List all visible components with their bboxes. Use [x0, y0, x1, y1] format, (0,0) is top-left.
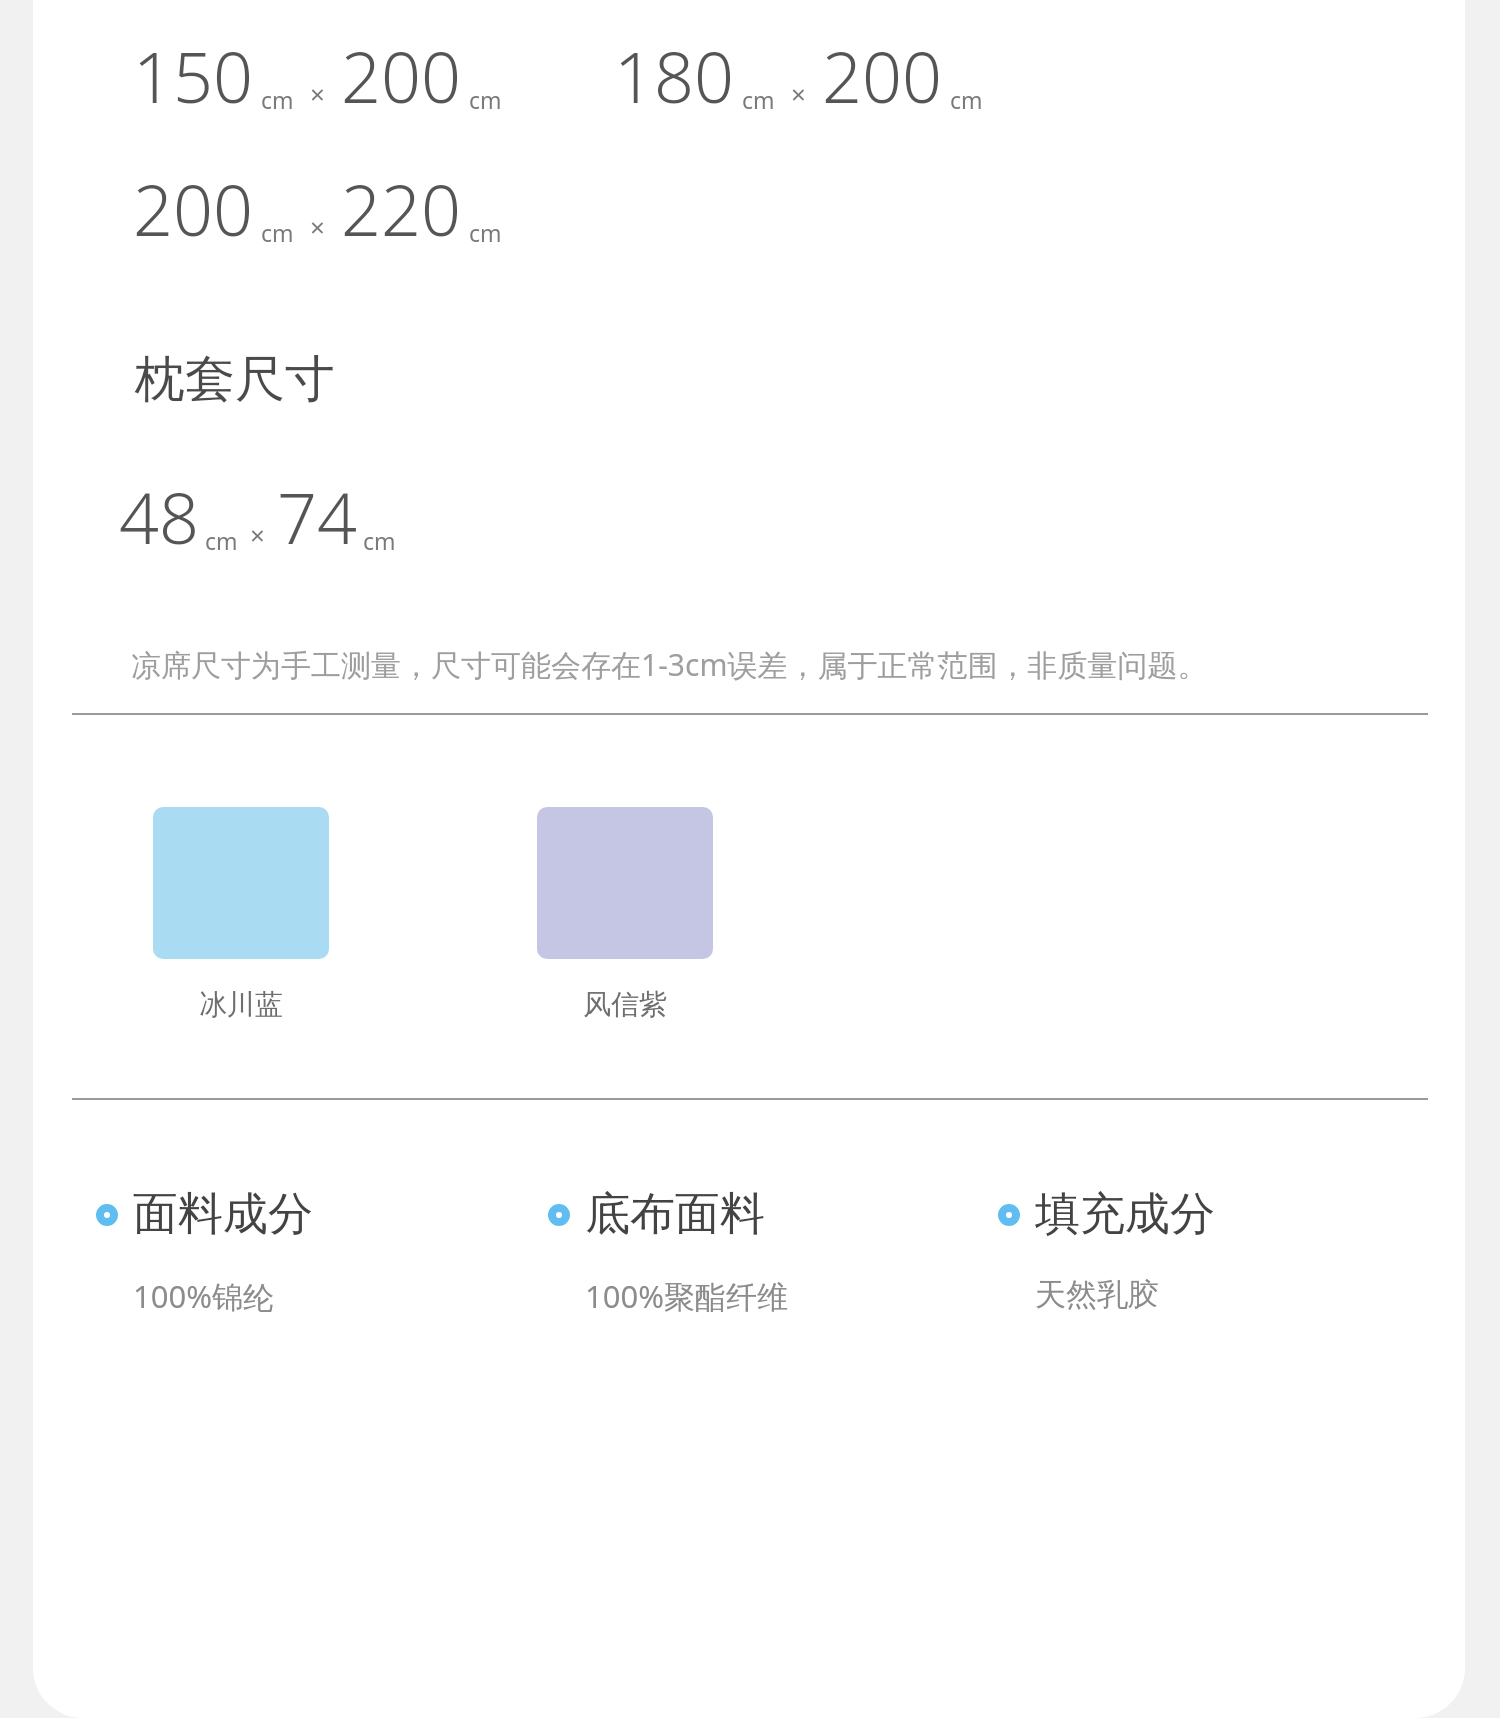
staticText: cm — [205, 525, 238, 556]
staticText: cm — [469, 217, 502, 248]
staticText: 面料成分 — [133, 1186, 313, 1243]
staticText: cm — [261, 84, 294, 115]
staticText: 冰川蓝 — [199, 987, 283, 1022]
staticText: 100%锦纶 — [133, 1275, 274, 1317]
staticText: 150 — [133, 28, 253, 123]
staticText: × — [310, 209, 325, 244]
staticText: cm — [950, 84, 983, 115]
staticText: × — [310, 76, 325, 111]
staticText: × — [250, 517, 265, 552]
staticText: 天然乳胶 — [1035, 1275, 1159, 1314]
staticText: cm — [363, 525, 396, 556]
staticText: 200 — [341, 28, 461, 123]
button[interactable]: 面料成分 — [95, 1186, 547, 1317]
button[interactable]: 填充成分 — [997, 1186, 1397, 1314]
button[interactable]: 冰川蓝 — [153, 807, 329, 1022]
staticText: 48 — [119, 469, 199, 564]
other: 面料成分 — [95, 1203, 119, 1227]
staticText: 74 — [277, 469, 357, 564]
staticText: 100%聚酯纤维 — [585, 1275, 788, 1317]
staticText: 枕套尺寸 — [135, 348, 335, 411]
staticText: 填充成分 — [1035, 1186, 1215, 1243]
staticText: 180 — [614, 28, 734, 123]
staticText: cm — [261, 217, 294, 248]
staticText: 200 — [822, 28, 942, 123]
staticText: 200 — [133, 161, 253, 256]
staticText: 220 — [341, 161, 461, 256]
staticText: 风信紫 — [583, 987, 667, 1022]
staticText: 凉席尺寸为手工测量，尺寸可能会存在1-3cm误差，属于正常范围，非质量问题。 — [131, 644, 1208, 685]
staticText: × — [791, 76, 806, 111]
other: 底布面料 — [547, 1203, 571, 1227]
staticText: cm — [742, 84, 775, 115]
button[interactable]: 风信紫 — [537, 807, 713, 1022]
other: 填充成分 — [997, 1203, 1021, 1227]
staticText: cm — [469, 84, 502, 115]
staticText: 底布面料 — [585, 1186, 765, 1243]
button[interactable]: 底布面料 — [547, 1186, 997, 1317]
